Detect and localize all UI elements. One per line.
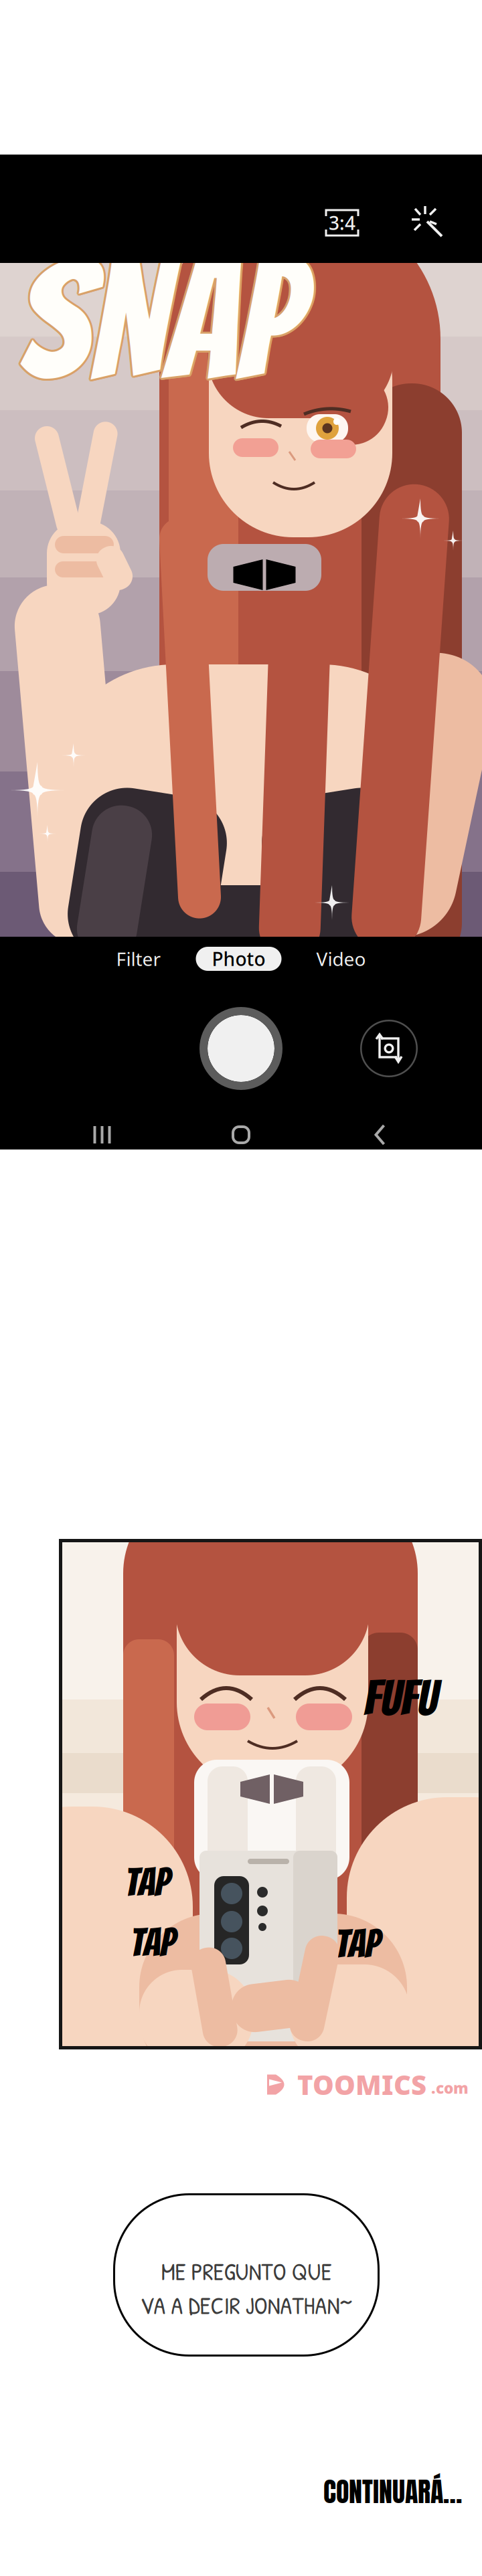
staticText: SNAP [20,231,301,408]
staticText: Video [316,946,366,971]
staticText: TAP [124,1861,169,1903]
staticText: Photo [212,946,265,971]
button[interactable]: Photo [196,947,282,971]
button[interactable]: Effects [404,199,453,247]
staticText: TOOMICS [297,2067,426,2102]
button[interactable]: Take photo [199,1007,283,1090]
staticText: SNAP [16,232,297,409]
staticText: SNAP [16,231,298,408]
staticText: .com [431,2078,469,2098]
staticText: SNAP [19,231,300,407]
button[interactable]: Aspect ratio 3 by 4 [316,200,368,246]
staticText: TAP [334,1923,379,1965]
staticText: SNAP [19,234,300,411]
staticText: SNAP [17,234,298,411]
staticText: SNAP [18,234,299,411]
staticText: SNAP [16,233,298,410]
staticText: VA A DECIR JONATHAN~ [140,2289,352,2322]
button[interactable]: Switch camera [360,1020,418,1077]
button[interactable]: Video [298,940,385,978]
button[interactable]: Back [343,1116,417,1154]
staticText: ME PREGUNTO QUE [161,2255,332,2288]
staticText: CONTINUARÁ… [323,2472,462,2512]
staticText: 3:4 [329,210,355,235]
staticText: Filter [116,946,161,971]
staticText: SNAP [20,232,301,409]
staticText: SNAP [17,231,298,407]
staticText: TAP [130,1921,174,1963]
button[interactable]: Recent apps [65,1116,139,1154]
staticText: SNAP [18,230,299,407]
staticText: FUFU [364,1673,437,1724]
button[interactable]: Home [204,1116,278,1154]
staticText: SNAP [18,232,299,409]
staticText: SNAP [20,233,301,410]
button[interactable]: Filter [97,940,180,978]
